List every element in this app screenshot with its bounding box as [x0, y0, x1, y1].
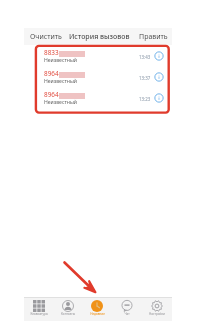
button[interactable]: Чат	[112, 298, 142, 316]
staticText: Настройки	[149, 312, 165, 316]
staticText: 8833	[44, 48, 59, 57]
staticText: Контакты	[61, 312, 75, 316]
staticText: Неизвестный	[44, 99, 77, 106]
staticText: 8964	[44, 90, 59, 99]
staticText: Чат	[124, 312, 130, 316]
staticText: 13:23	[139, 96, 151, 102]
button[interactable]: Править	[139, 32, 172, 42]
button[interactable]: Очистить	[24, 32, 62, 42]
button[interactable]: 8964	[24, 89, 172, 110]
staticText: История вызовов	[69, 32, 130, 42]
staticText: 8964	[44, 69, 59, 78]
staticText: Недавние	[90, 312, 105, 316]
staticText: 13:37	[139, 75, 151, 81]
button[interactable]: Подробнее о вызове	[154, 93, 164, 103]
staticText: Неизвестный	[44, 78, 77, 85]
button[interactable]: Недавние	[82, 298, 112, 316]
button[interactable]: Клавиатура	[24, 298, 53, 316]
button[interactable]: 8964	[24, 68, 172, 89]
button[interactable]: 8833	[24, 47, 172, 68]
staticText: Неизвестный	[44, 57, 77, 64]
button[interactable]: Настройки	[142, 298, 172, 316]
staticText: 13:43	[139, 54, 151, 60]
button[interactable]: Подробнее о вызове	[154, 72, 164, 82]
staticText: Клавиатура	[30, 312, 48, 316]
button[interactable]: Подробнее о вызове	[154, 51, 164, 61]
button[interactable]: Контакты	[53, 298, 82, 316]
